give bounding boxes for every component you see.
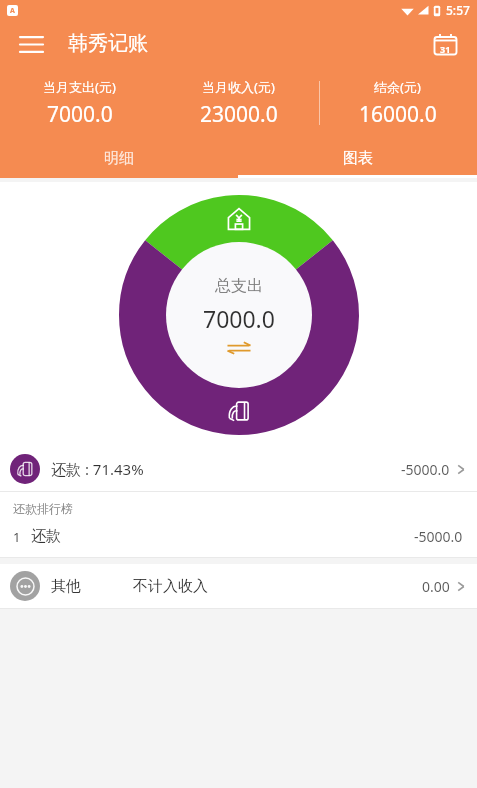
- button[interactable]: Menu: [10, 23, 52, 65]
- staticText: 31: [440, 43, 451, 55]
- button[interactable]: 明细: [0, 139, 238, 178]
- staticText: 23000.0: [200, 100, 278, 129]
- button[interactable]: 其他: [0, 564, 477, 608]
- staticText: 其他: [51, 577, 81, 596]
- staticText: 结余(元): [374, 78, 421, 96]
- staticText: 还款排行榜: [13, 501, 73, 516]
- button[interactable]: 还款 : 71.43%: [0, 447, 477, 491]
- staticText: 1: [13, 528, 21, 546]
- staticText: 0.00: [422, 577, 450, 596]
- staticText: -5000.0: [401, 460, 450, 479]
- staticText: 16000.0: [359, 100, 437, 129]
- staticText: -5000.0: [414, 527, 463, 546]
- staticText: 当月支出(元): [43, 78, 116, 96]
- staticText: 7000.0: [203, 303, 275, 334]
- button[interactable]: Calendar: [425, 24, 465, 64]
- staticText: 7000.0: [47, 100, 113, 129]
- staticText: 5:57: [446, 2, 470, 18]
- staticText: 图表: [343, 149, 373, 168]
- staticText: 不计入收入: [133, 577, 208, 596]
- button[interactable]: 图表: [238, 139, 477, 178]
- staticText: 当月收入(元): [202, 78, 275, 96]
- staticText: 还款: [31, 527, 61, 546]
- staticText: 总支出: [215, 276, 263, 296]
- staticText: 还款 : 71.43%: [51, 459, 144, 479]
- staticText: 韩秀记账: [68, 31, 148, 56]
- staticText: A: [10, 6, 15, 16]
- staticText: 明细: [104, 149, 134, 168]
